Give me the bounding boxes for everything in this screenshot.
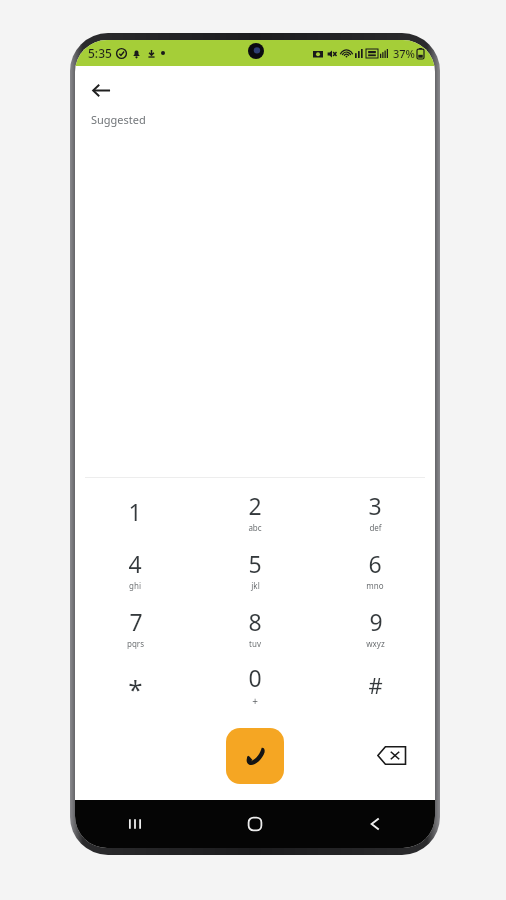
button[interactable]: 8 (195, 598, 315, 656)
staticText: 5:35 (88, 45, 112, 61)
staticText: wxyz (366, 638, 385, 649)
staticText: # (368, 670, 383, 700)
staticText: tuv (249, 638, 261, 649)
staticText: ghi (129, 580, 141, 591)
button[interactable]: 5 (195, 540, 315, 598)
button[interactable]: Backspace (371, 738, 413, 772)
button[interactable]: 9 (315, 598, 435, 656)
staticText: jkl (251, 580, 260, 591)
staticText: 0 (248, 662, 262, 693)
staticText: 2 (248, 490, 262, 521)
button[interactable]: 7 (75, 598, 195, 656)
staticText: pqrs (127, 638, 144, 649)
staticText: 6 (368, 548, 382, 579)
staticText: Suggested (91, 112, 146, 127)
button[interactable]: Back (83, 72, 119, 108)
button[interactable]: 4 (75, 540, 195, 598)
button[interactable]: 2 (195, 482, 315, 540)
button[interactable]: 0 (195, 656, 315, 714)
button[interactable]: 1 (75, 482, 195, 540)
staticText: 9 (369, 606, 383, 637)
button[interactable]: Home (195, 800, 315, 848)
button[interactable]: Recents (75, 800, 195, 848)
staticText: def (369, 522, 382, 533)
staticText: 3 (368, 490, 382, 521)
staticText: * (128, 671, 143, 706)
button[interactable]: Call (226, 728, 284, 784)
staticText: 5 (248, 548, 262, 579)
staticText: abc (248, 522, 262, 533)
button[interactable]: 6 (315, 540, 435, 598)
button[interactable]: Back (315, 800, 435, 848)
staticText: + (252, 694, 258, 708)
staticText: 7 (129, 606, 143, 637)
button[interactable]: # (315, 656, 435, 714)
staticText: 4 (128, 548, 142, 579)
staticText: mno (366, 580, 384, 591)
button[interactable]: * (75, 656, 195, 714)
button[interactable]: 3 (315, 482, 435, 540)
staticText: 1 (128, 496, 142, 527)
staticText: 8 (248, 606, 262, 637)
staticText: 37% (393, 46, 415, 61)
